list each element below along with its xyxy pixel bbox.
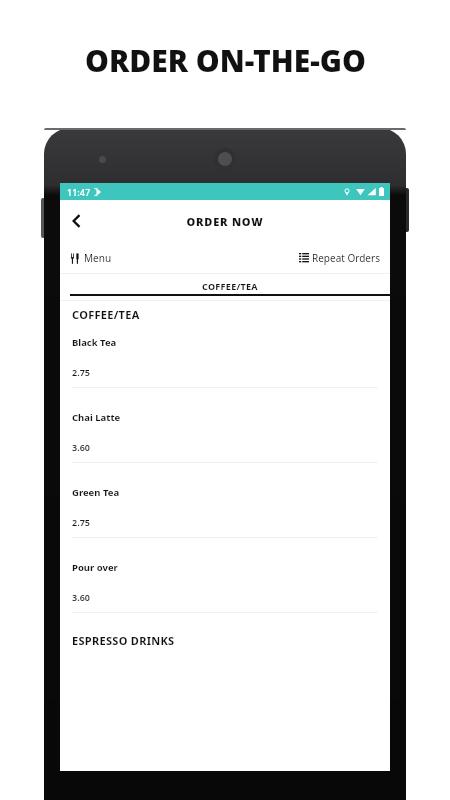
- staticText: COFFEE/TEA: [202, 280, 258, 292]
- staticText: 3.60: [72, 591, 90, 603]
- button[interactable]: Pour over: [60, 552, 390, 627]
- button[interactable]: Green Tea: [60, 477, 390, 552]
- staticText: Repeat Orders: [312, 251, 380, 265]
- staticText: 2.75: [72, 366, 90, 378]
- staticText: Chai Latte: [72, 411, 121, 424]
- staticText: 2.75: [72, 516, 90, 528]
- button[interactable]: COFFEE/TEA: [70, 280, 390, 296]
- button[interactable]: Back: [60, 204, 94, 238]
- staticText: 11:47: [67, 186, 91, 198]
- staticText: Menu: [84, 251, 112, 265]
- staticText: Green Tea: [72, 486, 120, 499]
- button[interactable]: Repeat Orders: [299, 251, 380, 265]
- staticText: Black Tea: [72, 336, 117, 349]
- button[interactable]: Black Tea: [60, 327, 390, 402]
- staticText: ESPRESSO DRINKS: [72, 633, 175, 648]
- staticText: ORDER ON-THE-GO: [85, 40, 366, 81]
- button[interactable]: Menu: [70, 251, 112, 265]
- staticText: COFFEE/TEA: [72, 307, 140, 322]
- staticText: ORDER NOW: [186, 214, 264, 229]
- button[interactable]: Chai Latte: [60, 402, 390, 477]
- staticText: 3.60: [72, 441, 90, 453]
- staticText: Pour over: [72, 561, 118, 574]
